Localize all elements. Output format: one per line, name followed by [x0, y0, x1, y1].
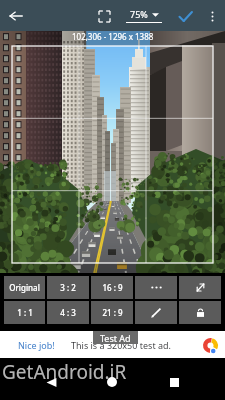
- button[interactable]: Edit: [135, 301, 177, 324]
- button[interactable]: Original: [4, 276, 45, 299]
- button[interactable]: 75%: [125, 8, 163, 23]
- button[interactable]: More options: [199, 3, 225, 29]
- button[interactable]: Apply: [171, 2, 199, 30]
- button[interactable]: Fullscreen: [90, 2, 118, 30]
- staticText: 3 : 2: [60, 282, 76, 293]
- staticText: This is a 320x50 test ad.: [71, 339, 171, 351]
- button[interactable]: Back: [41, 372, 61, 392]
- staticText: Nice job!: [18, 339, 55, 351]
- staticText: 4 : 3: [60, 307, 76, 318]
- staticText: 21 : 9: [102, 307, 123, 318]
- staticText: 16 : 9: [102, 282, 123, 293]
- button[interactable]: 1 : 1: [4, 301, 45, 324]
- staticText: GetAndroid.iR: [2, 359, 127, 385]
- button[interactable]: Recents: [164, 372, 184, 392]
- button[interactable]: 21 : 9: [91, 301, 133, 324]
- button[interactable]: More aspect ratios: [135, 276, 177, 299]
- button[interactable]: 3 : 2: [47, 276, 89, 299]
- button[interactable]: Free form: [179, 276, 221, 299]
- button[interactable]: 16 : 9: [91, 276, 133, 299]
- staticText: Test Ad: [100, 332, 131, 344]
- button[interactable]: Lock aspect ratio: [179, 301, 221, 324]
- staticText: Original: [9, 282, 40, 293]
- button[interactable]: 4 : 3: [47, 301, 89, 324]
- button[interactable]: Nice job!: [0, 331, 225, 358]
- button[interactable]: Back: [0, 0, 32, 31]
- staticText: 75%: [130, 8, 148, 20]
- staticText: 102,306 - 1296 x 1388: [72, 31, 154, 42]
- staticText: 1 : 1: [17, 307, 33, 318]
- button[interactable]: Home: [102, 372, 122, 392]
